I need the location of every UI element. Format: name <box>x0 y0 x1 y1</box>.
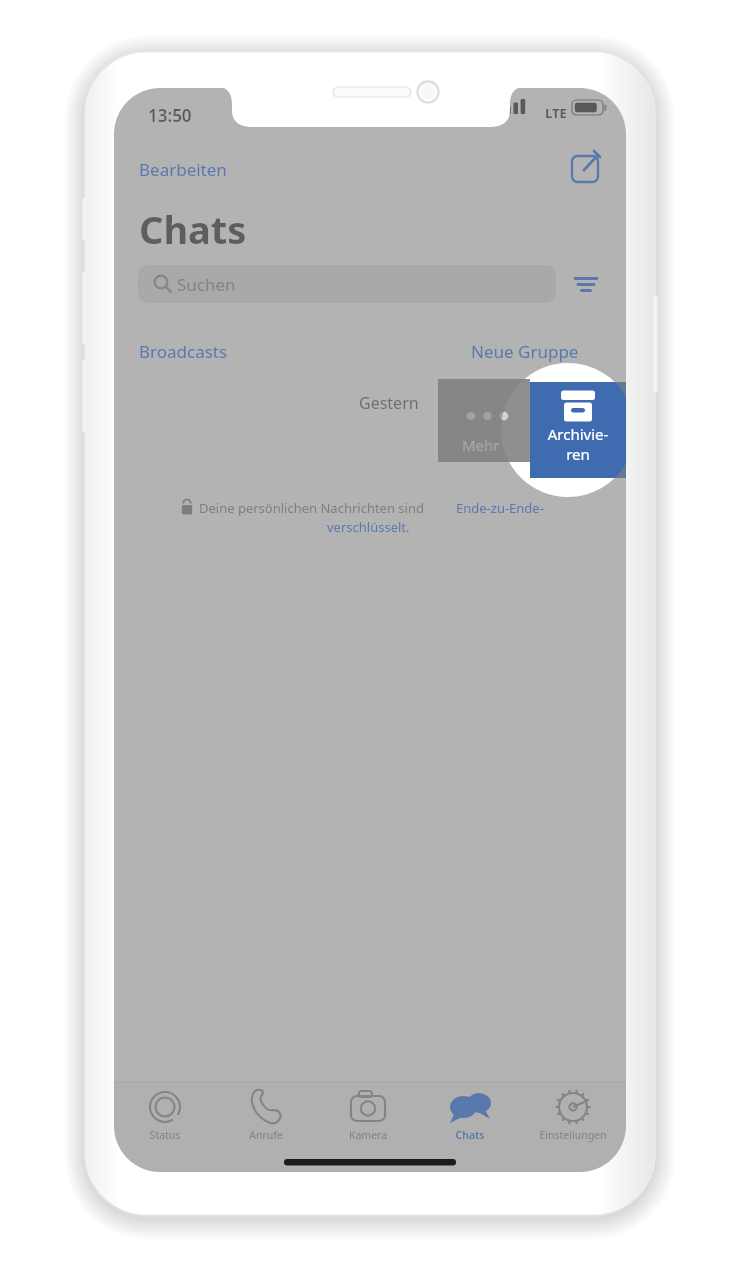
button[interactable]: Einstellungen <box>522 1086 624 1148</box>
staticText: verschlüsselt. <box>327 518 410 536</box>
staticText: Bearbeiten <box>139 158 227 181</box>
button[interactable]: Chats <box>419 1086 521 1148</box>
button[interactable] <box>135 150 255 184</box>
button[interactable]: Status <box>114 1086 216 1148</box>
staticText: Broadcasts <box>139 340 228 363</box>
staticText: Archivie- ren <box>530 424 626 464</box>
button[interactable] <box>466 332 616 366</box>
button[interactable] <box>135 332 265 366</box>
staticText: Neue Gruppe <box>471 340 579 363</box>
button[interactable]: Anrufe <box>215 1086 317 1148</box>
button[interactable]: Suchen <box>138 265 556 303</box>
staticText: 13:50 <box>148 104 192 127</box>
button[interactable]: Neue Nachricht <box>566 148 608 190</box>
staticText: Einstellungen <box>517 1128 629 1142</box>
staticText: Kamera <box>312 1128 424 1142</box>
staticText: Anrufe <box>210 1128 322 1142</box>
button[interactable] <box>452 492 607 526</box>
staticText: Suchen <box>177 273 236 296</box>
button[interactable] <box>135 150 255 184</box>
staticText: Ende-zu-Ende- <box>456 499 544 517</box>
staticText: Deine persönlichen Nachrichten sind <box>199 499 428 517</box>
staticText: Mehr <box>462 435 500 455</box>
button[interactable]: Kamera <box>317 1086 419 1148</box>
staticText: Status <box>109 1128 221 1142</box>
button[interactable]: Filter <box>566 264 608 306</box>
staticText: Chats <box>139 203 247 255</box>
button[interactable]: Archivieren <box>530 382 626 478</box>
button[interactable] <box>320 511 430 535</box>
staticText: LTE <box>545 104 567 122</box>
staticText: Chats <box>414 1128 526 1142</box>
staticText: Gestern <box>359 392 419 414</box>
button[interactable]: Mehr <box>438 379 530 462</box>
